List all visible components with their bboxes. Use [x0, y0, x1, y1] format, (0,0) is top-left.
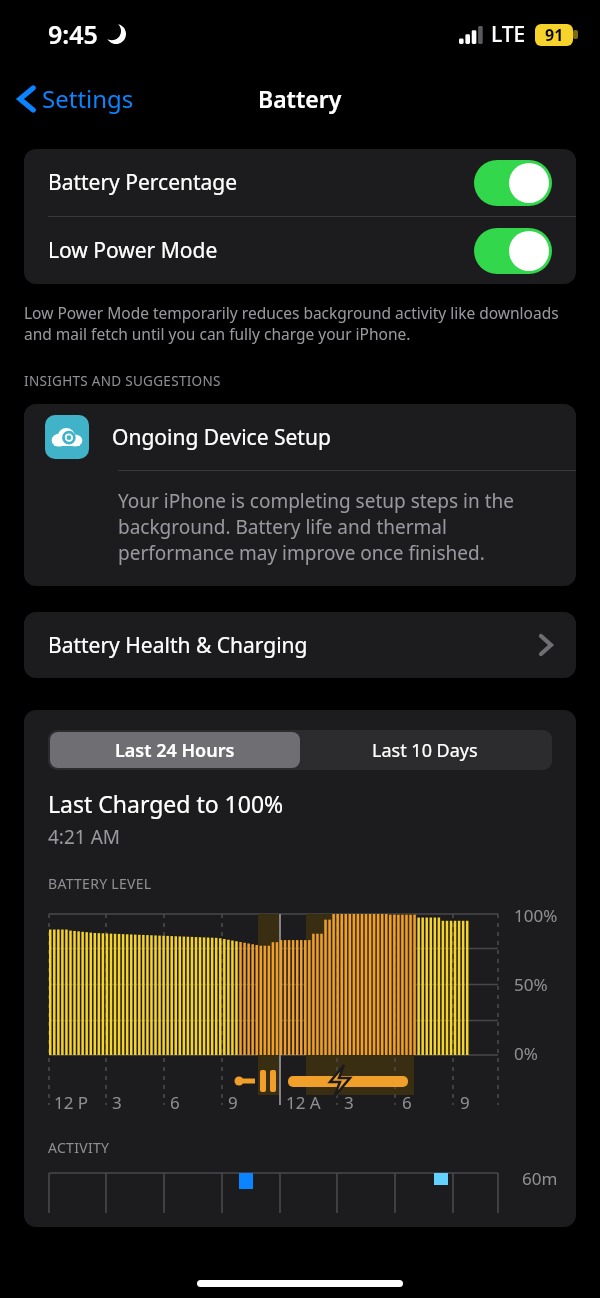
button[interactable]: Settings — [12, 76, 140, 121]
staticText: Your iPhone is completing setup steps in… — [118, 488, 556, 566]
staticText: BATTERY LEVEL — [48, 874, 152, 893]
button[interactable]: Battery Percentage — [24, 149, 576, 216]
staticText: Ongoing Device Setup — [112, 423, 331, 452]
staticText: Last 24 Hours — [115, 738, 235, 763]
staticText: 3 — [112, 1091, 122, 1114]
staticText: 4:21 AM — [48, 824, 121, 850]
staticText: Low Power Mode temporarily reduces backg… — [24, 302, 576, 344]
button[interactable]: Low Power Mode — [24, 217, 576, 284]
button[interactable]: Last 10 Days — [300, 732, 550, 768]
button[interactable]: Battery Health & Charging — [24, 612, 576, 678]
staticText: Last 10 Days — [372, 738, 478, 763]
staticText: ACTIVITY — [48, 1138, 110, 1157]
staticText: 9:45 — [48, 17, 98, 51]
staticText: 50% — [514, 973, 548, 996]
button[interactable]: Last 24 Hours — [50, 732, 300, 768]
staticText: 91 — [545, 24, 564, 46]
staticText: Battery Health & Charging — [48, 631, 540, 660]
staticText: Last Charged to 100% — [48, 788, 284, 819]
staticText: INSIGHTS AND SUGGESTIONS — [24, 372, 221, 390]
staticText: 6 — [402, 1091, 412, 1114]
staticText: Settings — [42, 82, 134, 115]
staticText: Battery — [258, 83, 342, 114]
button[interactable]: Toggle — [474, 160, 552, 206]
staticText: Low Power Mode — [48, 236, 474, 265]
staticText: Battery Percentage — [48, 168, 474, 197]
button[interactable]: Ongoing Device Setup — [24, 404, 576, 586]
staticText: 6 — [170, 1091, 180, 1114]
button[interactable]: Toggle — [474, 228, 552, 274]
staticText: 100% — [514, 904, 558, 927]
staticText: 12 P — [54, 1091, 89, 1114]
staticText: 12 A — [286, 1091, 321, 1114]
staticText: 9 — [228, 1091, 238, 1114]
staticText: 9 — [460, 1091, 470, 1114]
staticText: 0% — [514, 1042, 538, 1065]
staticText: 60m — [522, 1167, 558, 1190]
staticText: LTE — [491, 20, 526, 49]
staticText: 3 — [344, 1091, 354, 1114]
